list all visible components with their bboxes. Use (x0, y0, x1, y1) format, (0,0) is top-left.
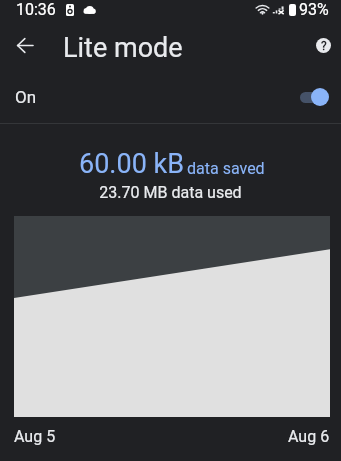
staticText: Aug 6 (288, 427, 330, 446)
staticText: Lite mode (63, 32, 183, 64)
staticText: data saved (187, 159, 265, 178)
staticText: Aug 5 (14, 427, 56, 446)
staticText: 93% (299, 0, 329, 19)
staticText: 60.00 kB (79, 148, 185, 180)
staticText: ? (321, 39, 327, 53)
staticText: 23.70 MB data used (0, 183, 341, 202)
button[interactable]: Help (301, 28, 341, 68)
staticText: On (15, 87, 37, 107)
button[interactable]: On (0, 70, 341, 123)
staticText: 10:36 (16, 0, 56, 19)
button[interactable]: Back (0, 25, 49, 70)
